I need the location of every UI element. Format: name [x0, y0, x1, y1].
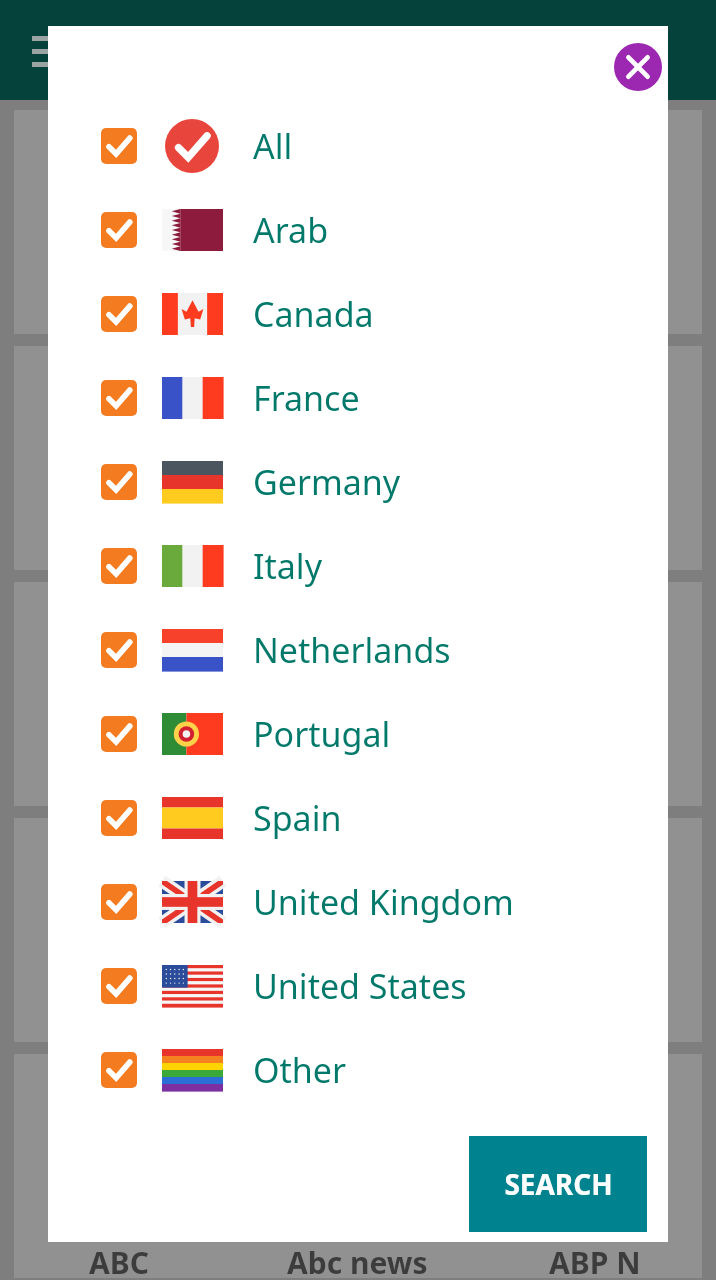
button[interactable]: Arab — [48, 188, 668, 272]
button[interactable]: United Kingdom — [48, 860, 668, 944]
staticText: SEARCH — [504, 1165, 613, 1203]
staticText: Abc news — [287, 1242, 428, 1280]
button[interactable]: Portugal — [48, 692, 668, 776]
staticText: Netherlands — [253, 627, 451, 673]
staticText: United States — [253, 963, 467, 1009]
staticText: Italy — [253, 543, 322, 589]
staticText: Canada — [253, 291, 374, 337]
button[interactable]: France — [48, 356, 668, 440]
staticText: France — [253, 375, 360, 421]
staticText: All — [253, 123, 293, 169]
button[interactable]: United States — [48, 944, 668, 1028]
staticText: Germany — [253, 459, 401, 505]
staticText: Spain — [253, 795, 342, 841]
button[interactable]: Spain — [48, 776, 668, 860]
button[interactable]: Other — [48, 1028, 668, 1112]
button[interactable]: All — [48, 104, 668, 188]
button[interactable]: Germany — [48, 440, 668, 524]
staticText: ABC — [89, 1242, 149, 1280]
staticText: Other — [253, 1047, 347, 1093]
button[interactable]: Netherlands — [48, 608, 668, 692]
staticText: Arab — [253, 207, 329, 253]
staticText: ABP N — [549, 1242, 641, 1280]
button[interactable]: Italy — [48, 524, 668, 608]
button[interactable]: Canada — [48, 272, 668, 356]
button[interactable]: SEARCH — [469, 1136, 647, 1232]
staticText: United Kingdom — [253, 879, 514, 925]
staticText: Portugal — [253, 711, 391, 757]
button[interactable]: Close — [614, 43, 662, 91]
